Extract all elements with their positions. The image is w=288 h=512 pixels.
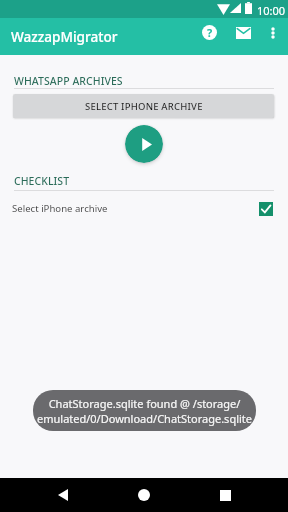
staticText: ?	[207, 25, 213, 40]
button[interactable]: Email	[229, 18, 258, 47]
staticText: SELECT IPHONE ARCHIVE	[85, 100, 203, 113]
staticText: CHECKLIST	[14, 174, 70, 188]
button[interactable]: Back	[44, 478, 82, 512]
staticText: 10:00	[257, 3, 286, 18]
staticText: Select iPhone archive	[12, 202, 108, 215]
button[interactable]: SELECT IPHONE ARCHIVE	[13, 94, 274, 118]
button[interactable]: Recent apps	[206, 478, 244, 512]
staticText: WHATSAPP ARCHIVES	[14, 74, 123, 88]
button[interactable]: More options	[258, 18, 287, 47]
staticText: WazzapMigrator	[11, 27, 118, 46]
button[interactable]: Select iPhone archive	[0, 196, 288, 222]
button[interactable]: Help	[195, 18, 224, 47]
button[interactable]: Home	[125, 478, 163, 512]
button[interactable]: Start migration	[125, 125, 163, 163]
staticText: ChatStorage.sqlite found @ /storage/ emu…	[37, 396, 252, 426]
